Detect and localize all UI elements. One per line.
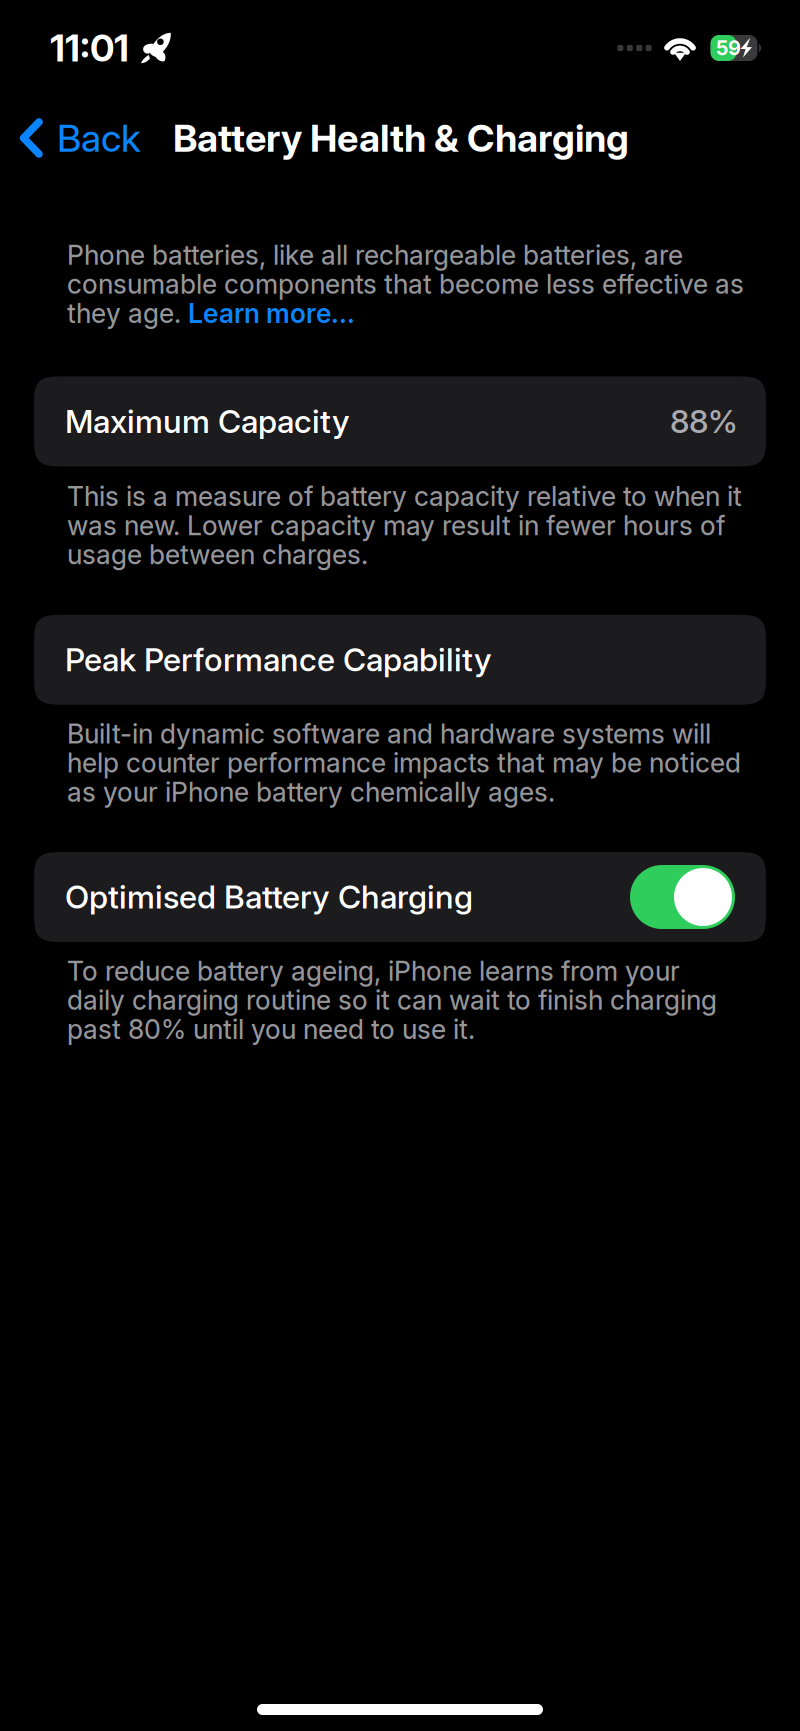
staticText: they age. <box>67 297 188 329</box>
button[interactable]: Optimised Battery Charging <box>34 852 766 942</box>
button[interactable]: Maximum Capacity <box>34 376 766 466</box>
staticText: Maximum Capacity <box>65 402 350 441</box>
staticText: To reduce battery ageing, iPhone learns … <box>67 955 680 987</box>
staticText: This is a measure of battery capacity re… <box>67 480 742 512</box>
staticText: 88% <box>670 402 738 441</box>
staticText: Built-in dynamic software and hardware s… <box>67 718 711 750</box>
staticText: Learn more... <box>188 297 355 329</box>
staticText: daily charging routine so it can wait to… <box>67 984 717 1016</box>
staticText: usage between charges. <box>67 539 368 571</box>
staticText: help counter performance impacts that ma… <box>67 747 741 779</box>
staticText: was new. Lower capacity may result in fe… <box>67 509 725 542</box>
staticText: Back <box>57 115 141 161</box>
button[interactable]: Peak Performance Capability <box>34 615 766 705</box>
staticText: 11:01 <box>50 25 129 71</box>
staticText: consumable components that become less e… <box>67 268 744 300</box>
staticText: Peak Performance Capability <box>65 640 492 679</box>
staticText: past 80% until you need to use it. <box>67 1013 475 1045</box>
staticText: 59 <box>716 36 741 60</box>
staticText: Phone batteries, like all rechargeable b… <box>67 239 683 271</box>
staticText: Optimised Battery Charging <box>65 878 473 916</box>
button[interactable]: Optimised Battery Charging <box>630 865 735 929</box>
button[interactable]: Back <box>0 101 151 175</box>
staticText: Battery Health & Charging <box>173 115 629 161</box>
staticText: as your iPhone battery chemically ages. <box>67 776 555 808</box>
